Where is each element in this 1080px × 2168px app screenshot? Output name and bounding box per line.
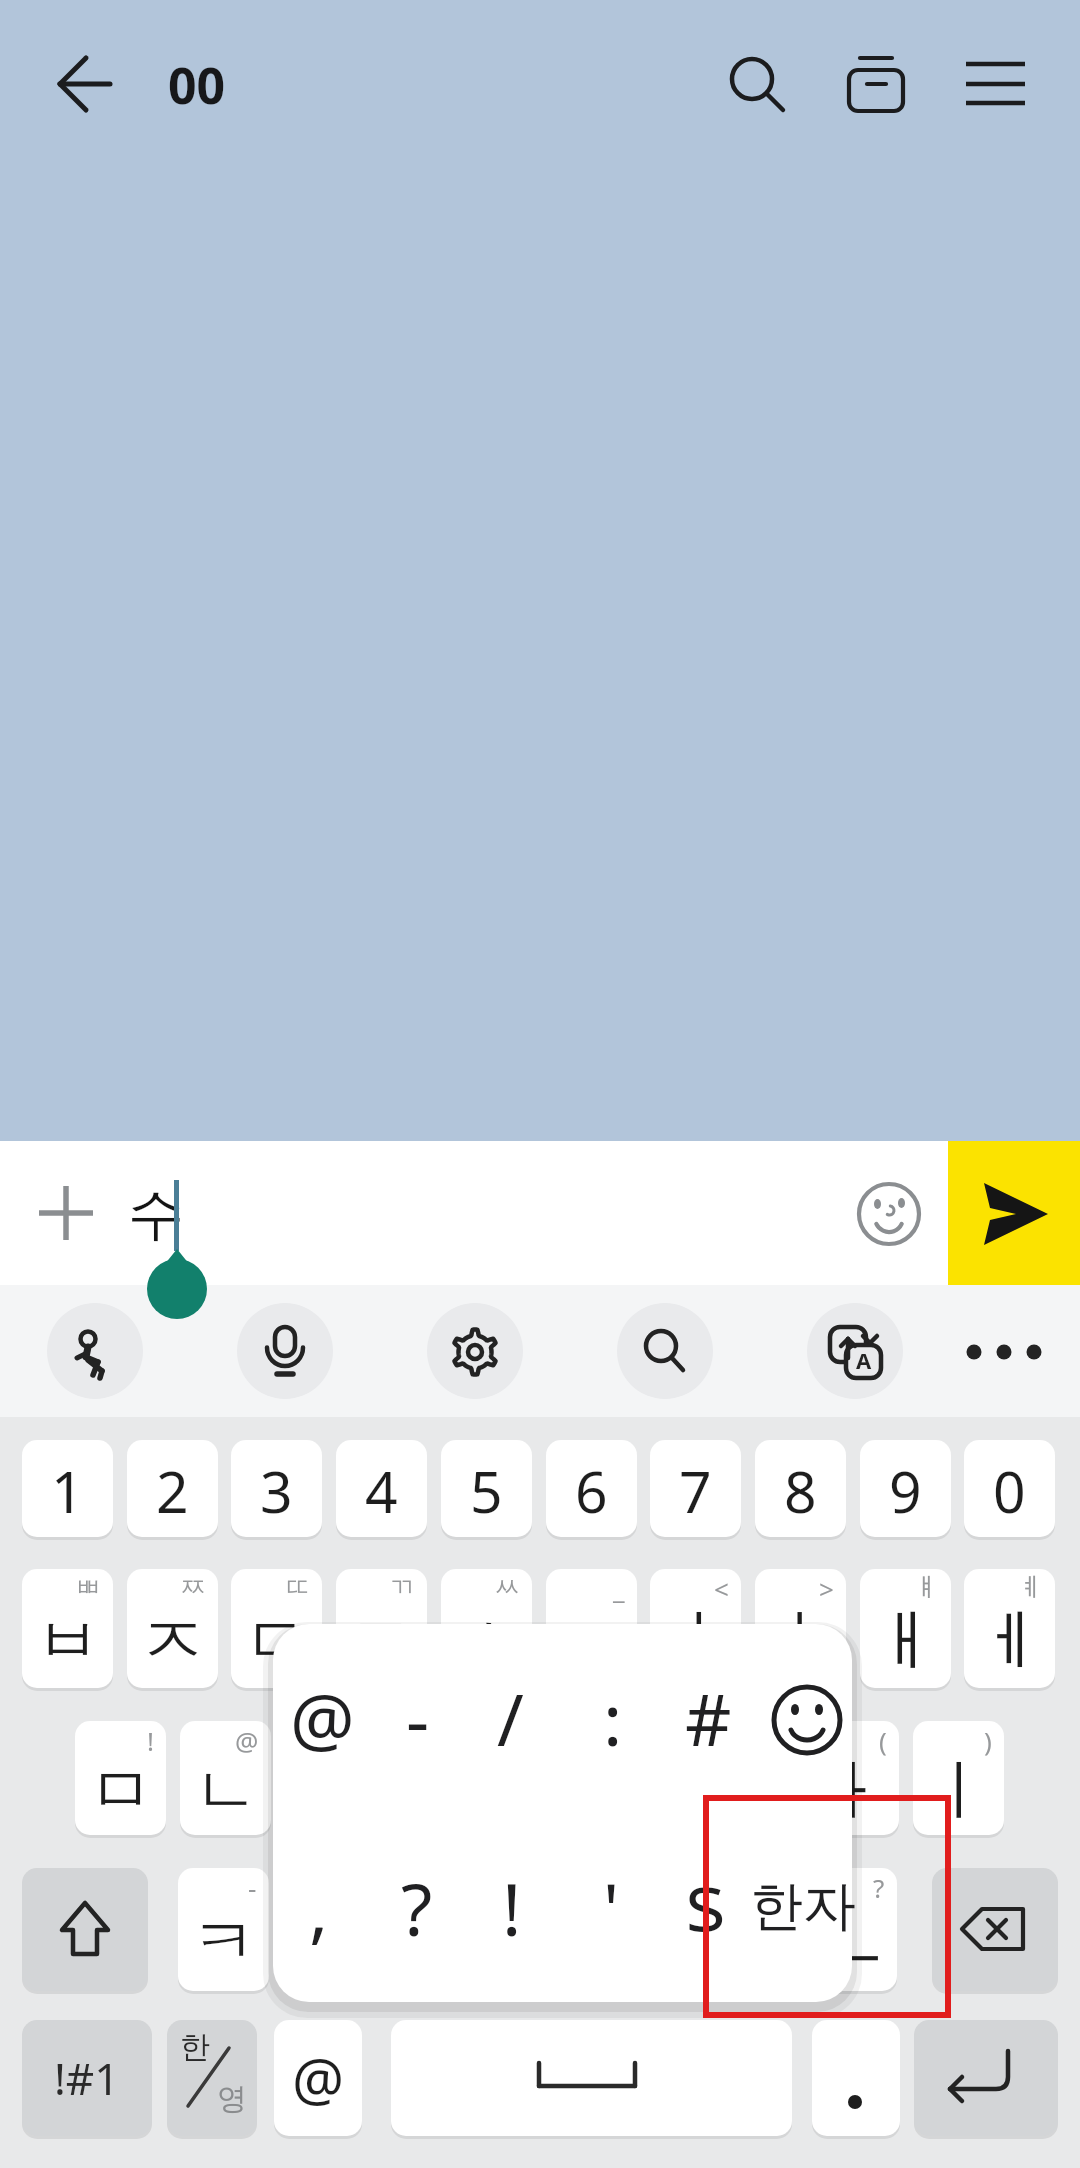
staticText: ㄲ <box>389 1571 415 1604</box>
button[interactable] <box>36 40 126 130</box>
button[interactable] <box>427 1303 523 1399</box>
staticText: A <box>856 1345 872 1375</box>
button[interactable]: 8 <box>755 1440 846 1537</box>
staticText: & <box>762 1723 782 1758</box>
button[interactable]: 9 <box>860 1440 951 1537</box>
staticText: ㅒ <box>913 1571 939 1604</box>
button[interactable]: ? <box>357 1848 477 1968</box>
button[interactable] <box>26 1173 106 1253</box>
staticText: < <box>714 1571 729 1606</box>
button[interactable]: ㅣ <box>913 1721 1004 1835</box>
button[interactable] <box>951 40 1041 130</box>
button[interactable]: 한 <box>167 2020 257 2136</box>
button[interactable]: ㄱ <box>336 1569 427 1688</box>
button[interactable] <box>747 1658 867 1778</box>
button[interactable] <box>617 1303 713 1399</box>
staticText: ㅃ <box>75 1571 101 1604</box>
staticText: 6 <box>575 1452 608 1530</box>
button[interactable]: $ <box>646 1848 766 1968</box>
button[interactable]: ㄷ <box>231 1569 322 1688</box>
button[interactable]: !#1 <box>22 2020 152 2136</box>
button[interactable]: ㅋ <box>178 1868 269 1991</box>
button[interactable]: # <box>648 1658 768 1778</box>
button[interactable]: 5 <box>441 1440 532 1537</box>
button[interactable] <box>914 2020 1058 2136</box>
staticText: ㅋ <box>191 1900 257 1983</box>
staticText: ㅡ <box>819 1900 885 1983</box>
button[interactable]: ㅕ <box>650 1569 741 1688</box>
staticText: @ <box>235 1723 259 1758</box>
staticText: , <box>774 1870 781 1905</box>
button[interactable]: 1 <box>22 1440 113 1537</box>
button[interactable]: ㅑ <box>755 1569 846 1688</box>
button[interactable] <box>849 1173 929 1253</box>
staticText: / <box>497 1669 524 1767</box>
button[interactable]: ㅛ <box>546 1569 637 1688</box>
button[interactable]: ㅅ <box>441 1569 532 1688</box>
button[interactable] <box>831 40 921 130</box>
button[interactable]: ' <box>551 1848 671 1968</box>
button[interactable]: 4 <box>336 1440 427 1537</box>
button[interactable]: , <box>259 1848 379 1968</box>
button[interactable]: 2 <box>127 1440 218 1537</box>
button[interactable] <box>237 1303 333 1399</box>
button[interactable] <box>948 1141 1080 1285</box>
staticText: ㅛ <box>559 1599 625 1682</box>
button[interactable]: 7 <box>650 1440 741 1537</box>
button[interactable]: ㅏ <box>808 1721 899 1835</box>
button[interactable]: ㅐ <box>860 1569 951 1688</box>
staticText: - <box>406 1669 430 1767</box>
button[interactable]: ㅡ <box>806 1868 897 1991</box>
button[interactable] <box>932 1868 1058 1991</box>
staticText: 한자 <box>750 1873 856 1940</box>
button[interactable] <box>807 1303 903 1399</box>
button[interactable]: 3 <box>231 1440 322 1537</box>
button[interactable]: ㅌ <box>283 1868 374 1991</box>
staticText: ㅓ <box>716 1749 782 1832</box>
button[interactable]: @ <box>274 2020 362 2136</box>
button[interactable] <box>47 1303 143 1399</box>
button[interactable] <box>712 40 802 130</box>
button[interactable]: ㄴ <box>180 1721 271 1835</box>
staticText: ㅑ <box>768 1599 834 1682</box>
staticText: ㅣ <box>926 1749 992 1832</box>
staticText: 영 <box>217 2080 247 2118</box>
button[interactable]: ㅇ <box>284 1721 375 1835</box>
button[interactable]: 한자 <box>743 1846 863 1966</box>
button[interactable]: ㅂ <box>22 1569 113 1688</box>
button[interactable]: - <box>358 1658 478 1778</box>
button[interactable]: 6 <box>546 1440 637 1537</box>
staticText: ㅜ <box>715 1900 781 1983</box>
button[interactable]: ㄹ <box>389 1721 480 1835</box>
button[interactable]: ㅎ <box>494 1721 585 1835</box>
staticText: ㅏ <box>821 1749 887 1832</box>
button[interactable]: ㅗ <box>599 1721 690 1835</box>
button[interactable]: 0 <box>964 1440 1055 1537</box>
staticText: 5 <box>470 1452 503 1530</box>
staticText: ㅖ <box>1017 1571 1043 1604</box>
button[interactable] <box>955 1315 1055 1385</box>
button[interactable] <box>22 1868 148 1991</box>
button[interactable]: ㅓ <box>703 1721 794 1835</box>
button[interactable]: / <box>450 1658 570 1778</box>
button[interactable]: ㅈ <box>127 1569 218 1688</box>
button[interactable]: ㅠ <box>597 1868 688 1991</box>
button[interactable]: : <box>553 1658 673 1778</box>
staticText: 00 <box>168 51 226 119</box>
button[interactable]: ㅁ <box>75 1721 166 1835</box>
button[interactable]: ㅍ <box>492 1868 583 1991</box>
button[interactable]: ㅜ <box>702 1868 793 1991</box>
button[interactable]: ㅔ <box>964 1569 1055 1688</box>
staticText: # <box>346 1723 363 1758</box>
button[interactable]: ! <box>452 1848 572 1968</box>
button[interactable]: ㅊ <box>387 1868 478 1991</box>
button[interactable] <box>391 2020 792 2136</box>
staticText: - <box>248 1870 257 1905</box>
button[interactable] <box>812 2020 900 2136</box>
button[interactable]: @ <box>262 1658 382 1778</box>
